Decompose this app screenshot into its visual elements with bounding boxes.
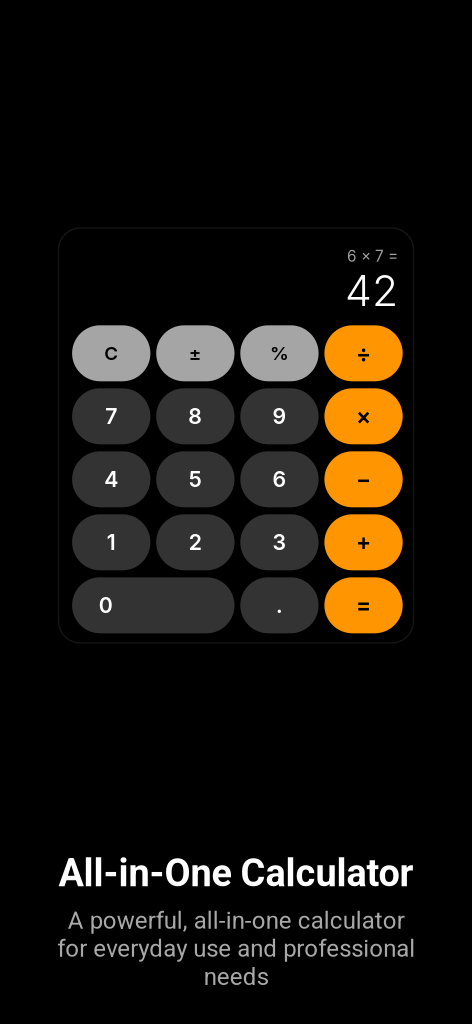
button[interactable]: 1 bbox=[72, 514, 150, 570]
button[interactable]: 0 bbox=[72, 577, 234, 633]
staticText: C bbox=[104, 342, 118, 365]
staticText: 2 bbox=[189, 529, 202, 555]
staticText: + bbox=[356, 529, 371, 556]
staticText: A powerful, all-in-one calculator for ev… bbox=[57, 906, 415, 991]
button[interactable]: % bbox=[240, 325, 319, 381]
staticText: 6 bbox=[272, 466, 286, 492]
staticText: 4 bbox=[104, 466, 118, 492]
button[interactable]: 3 bbox=[240, 514, 319, 570]
staticText: 7 bbox=[105, 403, 117, 429]
button[interactable]: 6 bbox=[240, 451, 319, 507]
button[interactable]: 4 bbox=[72, 451, 150, 507]
staticText: . bbox=[276, 592, 283, 618]
staticText: ÷ bbox=[356, 340, 371, 367]
staticText: 8 bbox=[188, 403, 202, 429]
button[interactable]: − bbox=[324, 451, 403, 507]
staticText: All-in-One Calculator bbox=[58, 851, 413, 895]
button[interactable]: × bbox=[324, 388, 403, 444]
button[interactable]: 9 bbox=[240, 388, 319, 444]
staticText: × bbox=[356, 403, 371, 430]
button[interactable]: = bbox=[324, 577, 403, 633]
button[interactable]: C bbox=[72, 325, 150, 381]
button[interactable]: ÷ bbox=[324, 325, 403, 381]
staticText: 5 bbox=[189, 466, 202, 492]
button[interactable]: + bbox=[324, 514, 403, 570]
staticText: 0 bbox=[99, 592, 113, 618]
button[interactable]: 2 bbox=[156, 514, 234, 570]
button[interactable]: . bbox=[240, 577, 319, 633]
button[interactable]: ± bbox=[156, 325, 234, 381]
staticText: 9 bbox=[272, 403, 286, 429]
staticText: ± bbox=[189, 342, 202, 365]
staticText: 3 bbox=[272, 529, 286, 555]
button[interactable]: 8 bbox=[156, 388, 234, 444]
button[interactable]: 5 bbox=[156, 451, 234, 507]
staticText: = bbox=[356, 592, 371, 619]
staticText: 42 bbox=[345, 265, 398, 316]
staticText: % bbox=[270, 342, 289, 365]
staticText: 6 × 7 = bbox=[347, 247, 398, 266]
staticText: 1 bbox=[107, 529, 116, 555]
button[interactable]: 7 bbox=[72, 388, 150, 444]
staticText: − bbox=[356, 466, 371, 493]
